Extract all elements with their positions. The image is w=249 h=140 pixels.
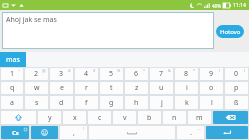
staticText: 1 — [10, 69, 15, 79]
staticText: u — [159, 83, 164, 93]
button[interactable]: o — [200, 82, 223, 94]
button[interactable]: c — [88, 111, 111, 124]
button[interactable]: Shift — [1, 111, 36, 124]
button[interactable]: d — [50, 96, 73, 109]
button[interactable]: q — [1, 82, 23, 94]
button[interactable]: y — [38, 111, 61, 124]
staticText: f — [85, 98, 88, 108]
button[interactable]: . — [177, 126, 204, 139]
staticText: * — [193, 68, 196, 73]
staticText: ~ — [18, 68, 21, 73]
staticText: 2 — [34, 69, 39, 79]
button[interactable]: mas — [0, 52, 26, 67]
staticText: g — [109, 98, 114, 108]
staticText: ^ — [143, 68, 146, 73]
staticText: d — [59, 98, 64, 108]
staticText: & — [168, 68, 171, 73]
button[interactable]: l — [200, 96, 223, 109]
staticText: 3 — [59, 69, 64, 79]
staticText: , — [73, 128, 75, 138]
staticText: mas — [6, 55, 20, 65]
staticText: # — [68, 68, 71, 73]
button[interactable]: 4 — [75, 68, 98, 80]
staticText: 11:14 — [233, 2, 246, 9]
button[interactable]: 5 — [100, 68, 123, 80]
button[interactable]: i — [175, 82, 198, 94]
button[interactable]: u — [150, 82, 173, 94]
staticText: Ahoj jak se mas — [6, 15, 57, 25]
staticText: h — [134, 98, 139, 108]
staticText: Cs — [12, 129, 19, 137]
button[interactable]: 7 — [150, 68, 173, 80]
button[interactable]: h — [125, 96, 148, 109]
staticText: 9 — [209, 69, 214, 79]
staticText: w — [34, 83, 40, 93]
button[interactable]: b — [138, 111, 161, 124]
staticText: s — [35, 98, 39, 108]
button[interactable]: k — [175, 96, 198, 109]
button[interactable]: 6 — [125, 68, 148, 80]
staticText: % — [117, 68, 121, 73]
button[interactable]: Backspace — [213, 111, 248, 124]
button[interactable]: 0 — [225, 68, 248, 80]
button[interactable]: n — [163, 111, 186, 124]
button[interactable]: j — [150, 96, 173, 109]
button[interactable]: x — [63, 111, 86, 124]
staticText: ! — [83, 126, 85, 131]
staticText: @ — [42, 68, 46, 73]
staticText: 4 — [84, 69, 89, 79]
staticText: y — [48, 113, 52, 123]
staticText: v — [123, 113, 127, 123]
button[interactable]: m — [188, 111, 211, 124]
button[interactable]: a — [1, 96, 23, 109]
button[interactable]: t — [100, 82, 123, 94]
staticText: 48% — [212, 3, 221, 9]
staticText: j — [161, 98, 163, 108]
button[interactable]: ß — [225, 96, 248, 109]
button[interactable]: w — [25, 82, 48, 94]
staticText: x — [73, 113, 77, 123]
staticText: 8 — [184, 69, 189, 79]
button[interactable]: 8 — [175, 68, 198, 80]
staticText: m — [196, 113, 203, 123]
staticText: t — [110, 83, 113, 93]
button[interactable]: , — [60, 126, 87, 139]
button[interactable]: Hotovo — [216, 25, 244, 38]
button[interactable]: Enter — [206, 126, 248, 139]
button[interactable]: 1 — [1, 68, 23, 80]
button[interactable]: v — [113, 111, 136, 124]
button[interactable]: 3 — [50, 68, 73, 80]
staticText: z — [135, 83, 139, 93]
staticText: r — [85, 83, 88, 93]
button[interactable]: f — [75, 96, 98, 109]
staticText: 0 — [234, 69, 239, 79]
staticText: … — [198, 126, 202, 131]
staticText: q — [10, 83, 15, 93]
button[interactable]: 9 — [200, 68, 223, 80]
staticText: a — [10, 98, 14, 108]
staticText: ) — [244, 68, 246, 73]
staticText: p — [234, 83, 239, 93]
staticText: ( — [219, 68, 221, 73]
staticText: . — [190, 128, 192, 138]
button[interactable]: Change language — [1, 126, 29, 139]
button[interactable]: z — [125, 82, 148, 94]
button[interactable]: e — [50, 82, 73, 94]
button[interactable]: Emoji — [31, 126, 58, 139]
button[interactable]: 2 — [25, 68, 48, 80]
staticText: 6 — [134, 69, 139, 79]
button[interactable]: r — [75, 82, 98, 94]
staticText: 7 — [159, 69, 164, 79]
staticText: b — [147, 113, 152, 123]
button[interactable]: Ahoj jak se mas — [2, 12, 214, 49]
staticText: c — [98, 113, 102, 123]
button[interactable]: s — [25, 96, 48, 109]
staticText: $ — [93, 68, 96, 73]
button[interactable]: g — [100, 96, 123, 109]
staticText: i — [186, 83, 188, 93]
button[interactable]: Space — [89, 126, 175, 139]
staticText: n — [172, 113, 177, 123]
button[interactable]: p — [225, 82, 248, 94]
staticText: 5 — [109, 69, 114, 79]
staticText: k — [185, 98, 189, 108]
